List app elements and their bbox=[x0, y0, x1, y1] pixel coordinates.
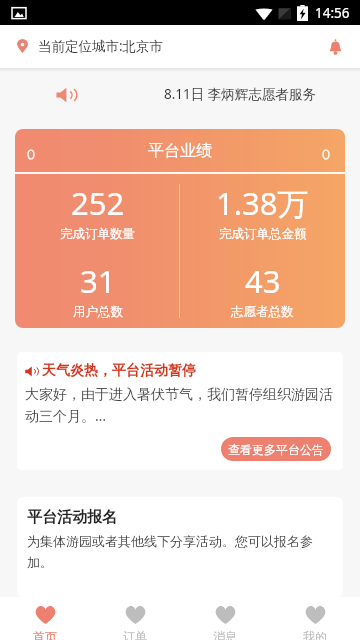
staticText: 查看更多平台公告 bbox=[228, 442, 324, 457]
staticText: 志愿者总数 bbox=[231, 304, 294, 320]
button[interactable]: 消息 bbox=[180, 597, 270, 640]
staticText: 我的 bbox=[303, 629, 327, 640]
staticText: 8.11日 李炳辉志愿者服务 bbox=[164, 85, 316, 103]
button[interactable]: 首页 bbox=[0, 597, 90, 640]
staticText: 大家好，由于进入暑伏节气，我们暂停组织游园活动三个月。… bbox=[25, 386, 334, 425]
staticText: 252 bbox=[71, 182, 125, 224]
button[interactable]: 8.11日 李炳辉志愿者服务 bbox=[0, 68, 360, 129]
staticText: 43 bbox=[245, 260, 281, 302]
staticText: 平台活动报名 bbox=[27, 508, 117, 527]
staticText: 完成订单数量 bbox=[60, 226, 135, 242]
button[interactable]: 查看更多平台公告 bbox=[221, 437, 331, 461]
button[interactable]: Notifications bbox=[322, 34, 348, 60]
staticText: 消息 bbox=[213, 629, 237, 640]
staticText: 订单 bbox=[123, 629, 147, 640]
staticText: 31 bbox=[80, 260, 116, 302]
staticText: 当前定位城市:北京市 bbox=[38, 37, 164, 55]
staticText: 平台业绩 bbox=[148, 141, 212, 161]
staticText: 14:56 bbox=[315, 4, 350, 22]
button[interactable]: 当前定位城市:北京市 bbox=[17, 37, 164, 55]
staticText: 完成订单总金额 bbox=[219, 226, 307, 242]
staticText: 用户总数 bbox=[73, 304, 123, 320]
staticText: 1.38万 bbox=[216, 182, 309, 224]
staticText: 为集体游园或者其他线下分享活动。您可以报名参加。 bbox=[27, 533, 332, 571]
button[interactable]: 平台业绩 bbox=[15, 129, 345, 328]
button[interactable]: 平台活动报名 bbox=[17, 497, 343, 597]
staticText: 首页 bbox=[33, 629, 57, 640]
staticText: 天气炎热，平台活动暂停 bbox=[42, 362, 196, 380]
button[interactable]: 我的 bbox=[270, 597, 360, 640]
button[interactable]: 天气炎热，平台活动暂停 bbox=[17, 352, 343, 470]
button[interactable]: 订单 bbox=[90, 597, 180, 640]
